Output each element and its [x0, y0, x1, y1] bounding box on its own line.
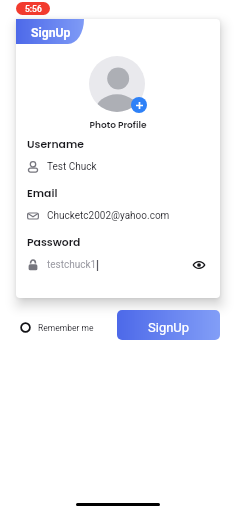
staticText: SignUp — [31, 26, 71, 40]
button[interactable]: Chucketc2002@yahoo.com — [27, 209, 207, 223]
button[interactable]: Add profile photo — [131, 97, 147, 113]
button[interactable]: testchuck1 — [27, 258, 207, 272]
staticText: Photo Profile — [16, 119, 220, 132]
button[interactable]: Remember me — [20, 318, 94, 337]
staticText: Password — [27, 235, 81, 250]
staticText: SignUp — [148, 320, 190, 335]
button[interactable]: SignUp — [117, 310, 220, 340]
staticText: Chucketc2002@yahoo.com — [47, 210, 170, 222]
staticText: testchuck1 — [47, 259, 97, 271]
staticText: Username — [27, 137, 84, 152]
staticText: Email — [27, 186, 58, 201]
button[interactable]: Show password — [191, 258, 207, 272]
staticText: Test Chuck — [47, 161, 97, 173]
staticText: Remember me — [38, 323, 94, 333]
button[interactable]: Test Chuck — [27, 160, 207, 174]
staticText: 5:56 — [25, 4, 42, 14]
